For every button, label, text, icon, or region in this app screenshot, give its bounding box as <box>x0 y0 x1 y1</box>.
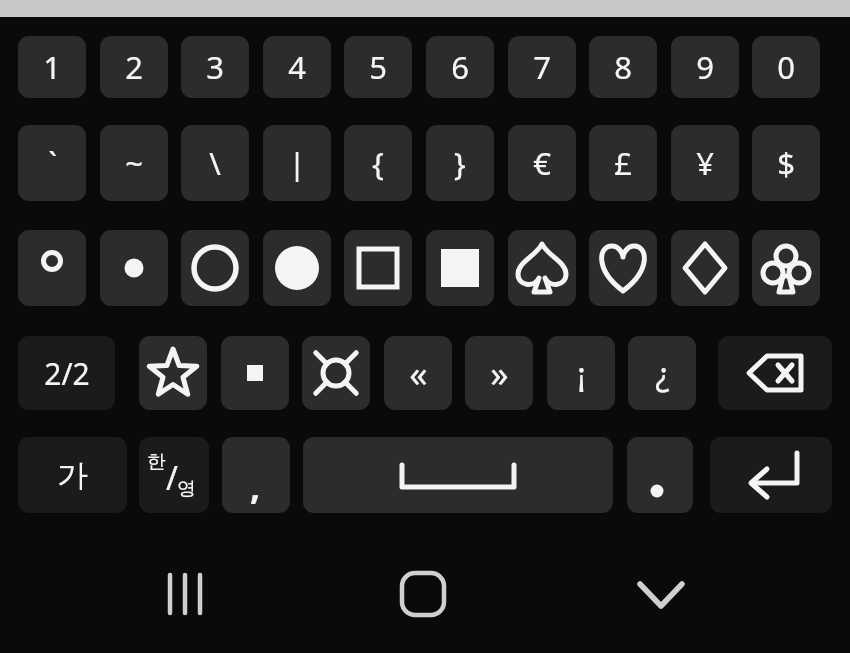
button[interactable]: ` <box>18 125 86 201</box>
staticText: 3 <box>206 46 224 88</box>
staticText: { <box>372 142 384 184</box>
staticText: 영 <box>177 477 196 501</box>
staticText: ¿ <box>655 351 670 396</box>
button[interactable]: £ <box>589 125 657 201</box>
staticText: / <box>166 456 178 500</box>
button[interactable]: Korean English toggle <box>139 437 209 513</box>
staticText: 한 <box>147 450 166 474</box>
staticText: » <box>490 349 509 398</box>
button[interactable]: spade <box>508 230 576 306</box>
staticText: $ <box>777 142 795 184</box>
staticText: 0 <box>777 46 795 88</box>
button[interactable]: » <box>465 336 533 410</box>
staticText: ¥ <box>696 142 714 184</box>
button[interactable]: ¡ <box>547 336 615 410</box>
button[interactable]: bullet <box>100 230 168 306</box>
button[interactable]: diamond <box>671 230 739 306</box>
button[interactable]: | <box>263 125 331 201</box>
staticText: 8 <box>614 46 632 88</box>
button[interactable]: small square <box>221 336 289 410</box>
staticText: £ <box>614 142 632 184</box>
button[interactable]: $ <box>752 125 820 201</box>
button[interactable]: degree <box>18 230 86 306</box>
staticText: | <box>288 142 306 184</box>
button[interactable]: circle <box>181 230 249 306</box>
staticText: 6 <box>451 46 469 88</box>
button[interactable]: , <box>222 437 290 513</box>
staticText: 4 <box>288 46 306 88</box>
button[interactable]: currency sign <box>302 336 370 410</box>
staticText: ~ <box>125 142 143 184</box>
staticText: 9 <box>696 46 714 88</box>
button[interactable]: 5 <box>344 36 412 98</box>
button[interactable]: ¥ <box>671 125 739 201</box>
button[interactable]: Home <box>388 563 458 625</box>
staticText: ` <box>48 142 57 184</box>
button[interactable]: { <box>344 125 412 201</box>
button[interactable]: Recents <box>150 563 220 625</box>
button[interactable]: 2 <box>100 36 168 98</box>
button[interactable]: square <box>344 230 412 306</box>
button[interactable]: « <box>384 336 452 410</box>
button[interactable]: club <box>752 230 820 306</box>
button[interactable]: 0 <box>752 36 820 98</box>
button[interactable]: period <box>627 437 693 513</box>
button[interactable]: Backspace <box>718 336 832 410</box>
button[interactable]: filled circle <box>263 230 331 306</box>
button[interactable]: star <box>139 336 207 410</box>
staticText: 5 <box>369 46 387 88</box>
staticText: , <box>250 461 261 510</box>
button[interactable]: Space <box>303 437 613 513</box>
button[interactable]: filled square <box>426 230 494 306</box>
button[interactable]: } <box>426 125 494 201</box>
button[interactable]: 가 <box>18 437 127 513</box>
button[interactable]: 2/2 <box>18 336 115 410</box>
staticText: 2 <box>125 46 143 88</box>
staticText: 1 <box>43 46 61 88</box>
button[interactable]: 7 <box>508 36 576 98</box>
button[interactable]: 8 <box>589 36 657 98</box>
staticText: \ <box>209 142 221 184</box>
button[interactable]: € <box>508 125 576 201</box>
button[interactable]: 1 <box>18 36 86 98</box>
staticText: € <box>533 142 551 184</box>
staticText: ¡ <box>577 351 586 396</box>
staticText: 7 <box>533 46 551 88</box>
staticText: « <box>409 349 428 398</box>
button[interactable]: \ <box>181 125 249 201</box>
staticText: 2/2 <box>44 353 90 394</box>
button[interactable]: Enter <box>710 437 832 513</box>
button[interactable]: 6 <box>426 36 494 98</box>
button[interactable]: 4 <box>263 36 331 98</box>
staticText: } <box>454 142 466 184</box>
button[interactable]: 3 <box>181 36 249 98</box>
staticText: 가 <box>57 456 88 495</box>
button[interactable]: heart <box>589 230 657 306</box>
button[interactable]: Hide keyboard <box>626 563 696 625</box>
button[interactable]: 9 <box>671 36 739 98</box>
button[interactable]: ¿ <box>628 336 696 410</box>
button[interactable]: ~ <box>100 125 168 201</box>
